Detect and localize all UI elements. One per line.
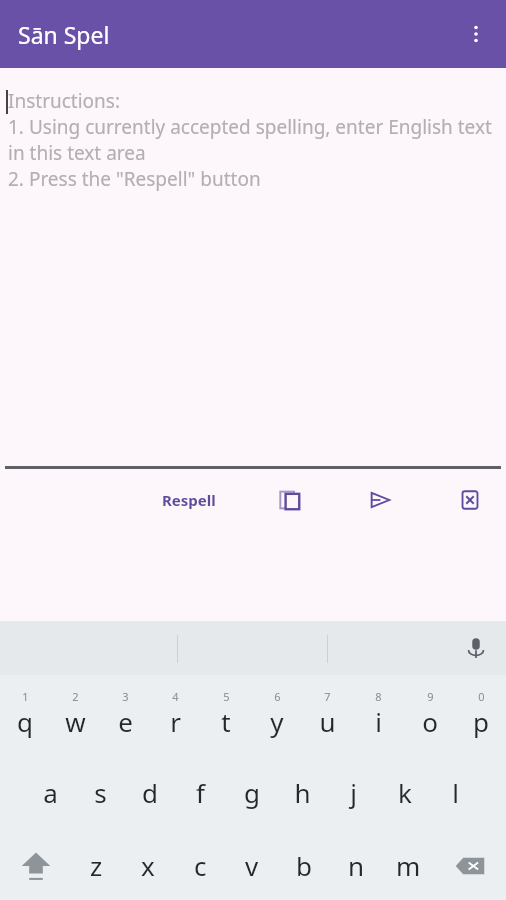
- button[interactable]: s: [75, 753, 125, 831]
- button[interactable]: 3: [100, 675, 150, 753]
- staticText: 2. Press the "Respell" button: [8, 166, 261, 192]
- staticText: i: [375, 704, 382, 739]
- button[interactable]: 1: [0, 675, 50, 753]
- button[interactable]: Backspace: [434, 831, 506, 900]
- button[interactable]: 0: [455, 675, 506, 753]
- button[interactable]: l: [430, 753, 481, 831]
- button[interactable]: 4: [150, 675, 200, 753]
- staticText: k: [398, 775, 412, 810]
- button[interactable]: a: [25, 753, 75, 831]
- button[interactable]: Send: [360, 480, 400, 520]
- staticText: h: [294, 775, 311, 810]
- staticText: 9: [427, 689, 434, 704]
- button[interactable]: c: [174, 831, 226, 900]
- staticText: v: [245, 848, 259, 883]
- staticText: 6: [274, 689, 281, 704]
- button[interactable]: Clear: [450, 480, 490, 520]
- staticText: s: [94, 775, 107, 810]
- staticText: 3: [122, 689, 129, 704]
- staticText: p: [473, 704, 489, 739]
- button[interactable]: Shift: [0, 831, 71, 900]
- staticText: l: [452, 775, 459, 810]
- button[interactable]: 9: [404, 675, 455, 753]
- staticText: u: [319, 704, 336, 739]
- button[interactable]: k: [379, 753, 430, 831]
- staticText: r: [170, 704, 181, 739]
- staticText: q: [17, 704, 33, 739]
- button[interactable]: More options: [452, 10, 500, 58]
- button[interactable]: Copy: [270, 480, 310, 520]
- staticText: e: [118, 704, 133, 739]
- staticText: 5: [223, 689, 230, 704]
- staticText: 1: [22, 689, 29, 704]
- staticText: j: [350, 775, 357, 810]
- staticText: g: [244, 775, 260, 810]
- staticText: Sān Spel: [18, 19, 110, 50]
- staticText: Respell: [162, 490, 216, 510]
- button[interactable]: z: [71, 831, 122, 900]
- staticText: 7: [324, 689, 331, 704]
- staticText: f: [196, 775, 205, 810]
- staticText: n: [348, 848, 365, 883]
- staticText: z: [90, 848, 103, 883]
- button[interactable]: b: [278, 831, 330, 900]
- button[interactable]: 2: [50, 675, 100, 753]
- staticText: a: [43, 775, 58, 810]
- button[interactable]: x: [122, 831, 174, 900]
- staticText: y: [270, 704, 284, 739]
- button[interactable]: j: [328, 753, 379, 831]
- button[interactable]: n: [330, 831, 382, 900]
- button[interactable]: v: [226, 831, 278, 900]
- button[interactable]: Voice input: [456, 628, 496, 668]
- staticText: d: [142, 775, 158, 810]
- staticText: w: [65, 704, 86, 739]
- button[interactable]: Respell: [150, 482, 228, 518]
- staticText: 8: [375, 689, 382, 704]
- staticText: 0: [478, 689, 485, 704]
- staticText: t: [221, 704, 231, 739]
- staticText: c: [194, 848, 207, 883]
- button[interactable]: 8: [353, 675, 404, 753]
- staticText: m: [396, 848, 421, 883]
- button[interactable]: d: [125, 753, 175, 831]
- button[interactable]: 5: [200, 675, 251, 753]
- staticText: o: [422, 704, 438, 739]
- button[interactable]: 6: [251, 675, 302, 753]
- staticText: b: [296, 848, 312, 883]
- button[interactable]: g: [226, 753, 277, 831]
- staticText: 4: [172, 689, 179, 704]
- staticText: x: [141, 848, 155, 883]
- staticText: 2: [72, 689, 79, 704]
- staticText: Instructions:: [8, 88, 121, 114]
- button[interactable]: h: [277, 753, 328, 831]
- button[interactable]: 7: [302, 675, 353, 753]
- button[interactable]: f: [175, 753, 226, 831]
- staticText: 1. Using currently accepted spelling, en…: [8, 114, 496, 166]
- button[interactable]: m: [382, 831, 434, 900]
